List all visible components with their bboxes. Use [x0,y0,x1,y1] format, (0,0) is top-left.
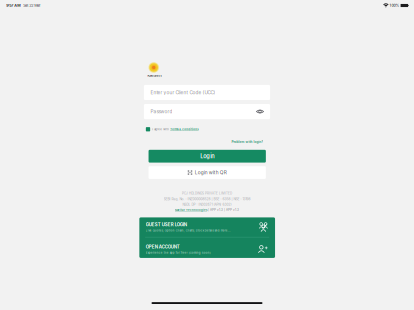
button[interactable]: Problem with login? [231,138,263,145]
staticText: Login with QR [195,170,227,175]
staticText: 100% [389,3,401,8]
staticText: PCJ HOLDINGS [147,75,161,77]
staticText: PCJ HOLDINGS PRIVATE LIMITED [182,192,232,195]
staticText: Problem with login? [231,140,263,144]
button[interactable]: Guest user login [139,217,275,237]
button[interactable]: Enter your Client Code (UCC) [144,85,270,100]
button[interactable]: Navitar Technologies [175,208,207,212]
staticText: Experience the app for free! (Coming Soo… [146,251,211,254]
button[interactable]: Login [149,150,266,163]
staticText: 9:57 AM [6,3,20,8]
staticText: I agree with [150,128,170,131]
staticText: Navitar Technologies [175,208,207,212]
button[interactable]: I agree with [144,119,270,138]
staticText: Sat 22 Mar [20,3,40,8]
staticText: Login [200,153,214,160]
staticText: NSDL DP : IN302871 (APN: 6302) [182,203,231,207]
staticText: Enter your Client Code (UCC) [150,90,215,95]
button[interactable]: Login with QR [149,166,266,179]
staticText: Terms & conditions [170,128,198,131]
button[interactable]: Password [144,104,270,119]
staticText: GUEST USER LOGIN [146,222,187,227]
staticText: Live Quotes, Option Chain, Charts, Stock… [146,229,231,232]
button[interactable]: Open account [139,237,275,258]
staticText: Password [150,109,172,114]
staticText: OPEN ACCOUNT [146,244,180,249]
staticText: | APP v1.3 | APP v1.3 [207,208,239,212]
staticText: SEBI Reg. No. : INZ000008528 | BSE : 635… [163,197,250,201]
